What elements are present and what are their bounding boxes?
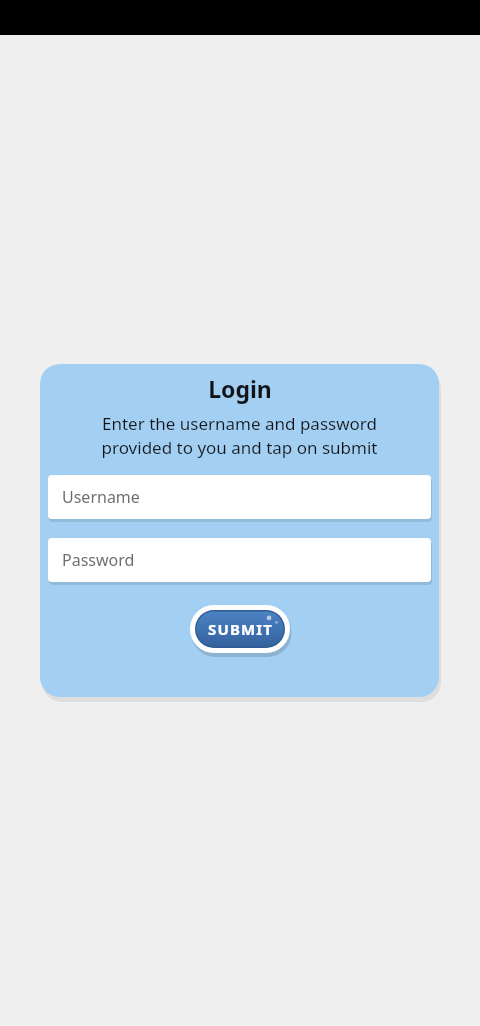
staticText: Password [62,549,135,571]
staticText: Username [62,486,140,508]
button[interactable]: Password [48,538,431,582]
staticText: SUBMIT [208,619,273,639]
button[interactable]: Submit [190,605,290,653]
button[interactable]: Username [48,475,431,519]
staticText: Login [208,373,272,404]
staticText: Enter the username and password provided… [48,412,431,459]
